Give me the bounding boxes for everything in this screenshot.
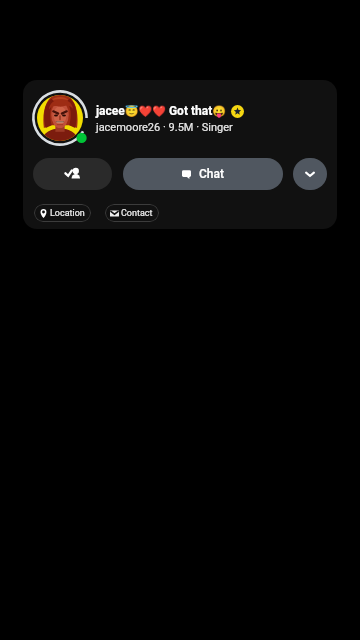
button[interactable]: Chat xyxy=(123,158,283,190)
button[interactable]: Location xyxy=(34,204,91,222)
button[interactable]: More options xyxy=(293,158,327,190)
staticText: Location xyxy=(50,208,85,219)
staticText: jacemoore26 · 9.5M · Singer xyxy=(96,121,233,134)
button[interactable]: Contact xyxy=(105,204,159,222)
staticText: Contact xyxy=(121,208,153,219)
button[interactable]: Following xyxy=(33,158,112,190)
staticText: Chat xyxy=(199,167,224,181)
staticText: jacee😇❤️❤️ Got that😛 xyxy=(96,104,226,118)
